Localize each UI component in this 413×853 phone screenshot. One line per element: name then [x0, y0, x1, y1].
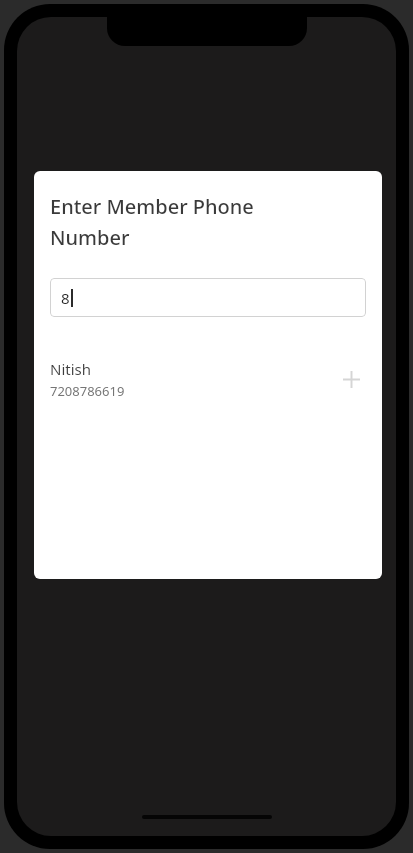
staticText: 8: [61, 288, 70, 308]
button[interactable]: 8: [50, 278, 366, 317]
staticText: 7208786619: [50, 382, 125, 400]
staticText: Enter Member Phone Number: [50, 193, 290, 251]
button[interactable]: Add member: [336, 364, 366, 394]
staticText: Nitish: [50, 359, 92, 379]
button[interactable]: Nitish: [50, 357, 366, 401]
